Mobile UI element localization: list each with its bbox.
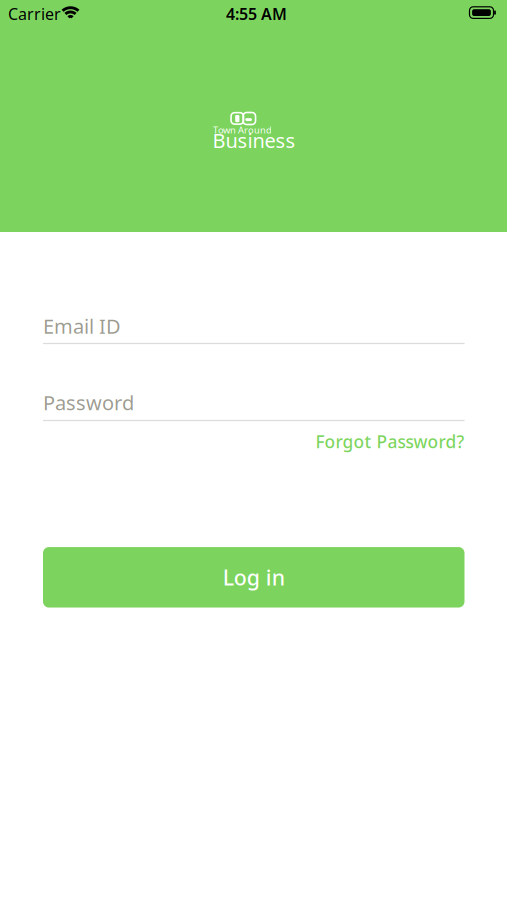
staticText: Town Around — [213, 124, 272, 136]
staticText: Carrier — [8, 3, 61, 24]
staticText: Email ID — [43, 313, 121, 339]
staticText: 4:55 AM — [226, 3, 287, 24]
staticText: Forgot Password? — [315, 430, 464, 453]
staticText: Business — [212, 127, 295, 154]
staticText: Log in — [223, 563, 285, 591]
button[interactable]: Forgot Password? — [315, 430, 464, 453]
staticText: Password — [43, 389, 134, 416]
textField[interactable]: Email ID — [43, 313, 464, 339]
button[interactable]: Log in — [43, 547, 464, 607]
textField[interactable]: Password — [43, 389, 464, 416]
